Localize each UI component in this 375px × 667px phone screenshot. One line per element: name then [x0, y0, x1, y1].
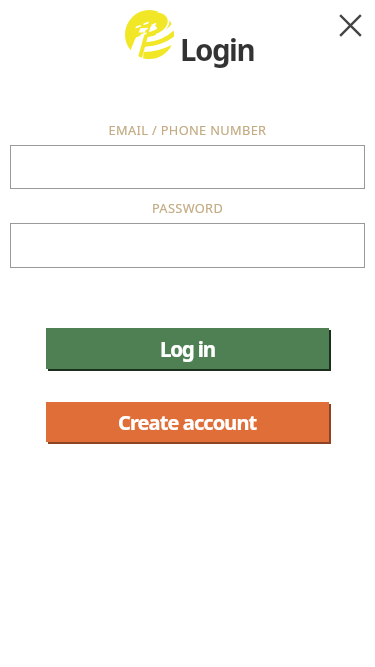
- staticText: PASSWORD: [0, 199, 375, 216]
- button[interactable]: Log in: [46, 328, 329, 369]
- staticText: Create account: [118, 409, 257, 436]
- button[interactable]: [10, 145, 365, 189]
- staticText: Login: [180, 29, 255, 69]
- staticText: Log in: [160, 335, 215, 363]
- button[interactable]: [10, 223, 365, 268]
- button[interactable]: Create account: [46, 402, 329, 442]
- button[interactable]: Close: [334, 9, 366, 41]
- staticText: EMAIL / PHONE NUMBER: [0, 121, 375, 138]
